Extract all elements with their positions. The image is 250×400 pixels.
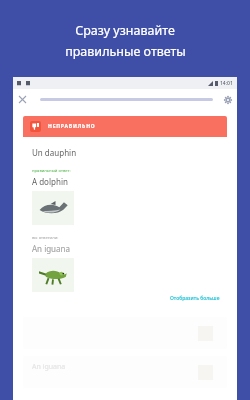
staticText: правильный ответ: bbox=[32, 168, 71, 174]
button[interactable]: НЕПРАВИЛЬНО bbox=[23, 116, 227, 137]
staticText: An iguana bbox=[32, 362, 66, 372]
staticText: 14:01 bbox=[220, 80, 233, 87]
staticText: An iguana bbox=[32, 243, 70, 254]
staticText: НЕПРАВИЛЬНО bbox=[48, 123, 96, 130]
staticText: A dolphin bbox=[32, 176, 68, 187]
button[interactable]: Close bbox=[16, 93, 29, 106]
staticText: вы ответили: bbox=[32, 235, 59, 241]
staticText: Отобразить больше bbox=[170, 295, 220, 302]
button[interactable]: Settings bbox=[221, 93, 234, 106]
staticText: правильные ответы bbox=[65, 43, 186, 60]
staticText: Сразу узнавайте bbox=[75, 22, 175, 39]
button[interactable]: Отобразить больше bbox=[170, 292, 227, 308]
staticText: Un dauphin bbox=[32, 147, 77, 158]
